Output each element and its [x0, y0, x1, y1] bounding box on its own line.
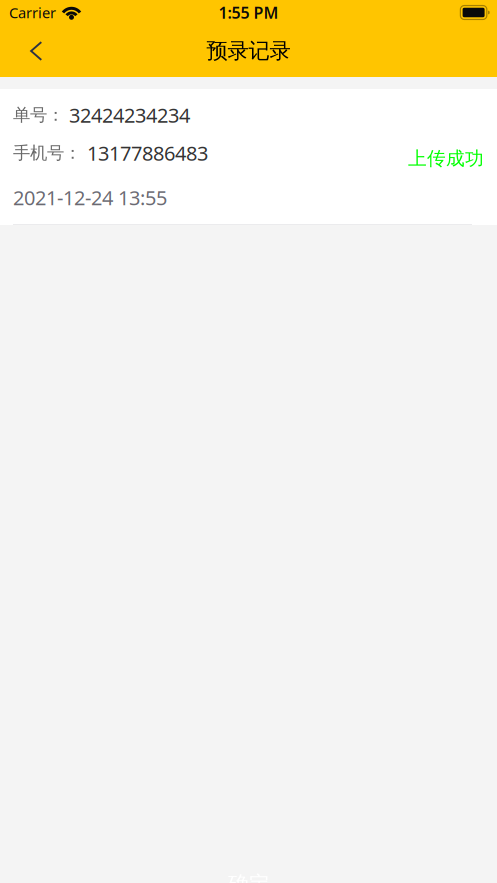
staticText: 2021-12-24 13:55 [13, 184, 167, 211]
staticText: Carrier [9, 3, 56, 22]
staticText: 上传成功 [408, 147, 484, 170]
staticText: 1:55 PM [218, 2, 278, 23]
staticText: 手机号： [13, 142, 81, 164]
staticText: 32424234234 [69, 102, 190, 128]
staticText: 确定 [227, 871, 269, 883]
staticText: 单号： [13, 104, 64, 126]
button[interactable]: Back [0, 26, 56, 76]
staticText: 13177886483 [87, 140, 208, 166]
staticText: 预录记录 [206, 38, 290, 64]
